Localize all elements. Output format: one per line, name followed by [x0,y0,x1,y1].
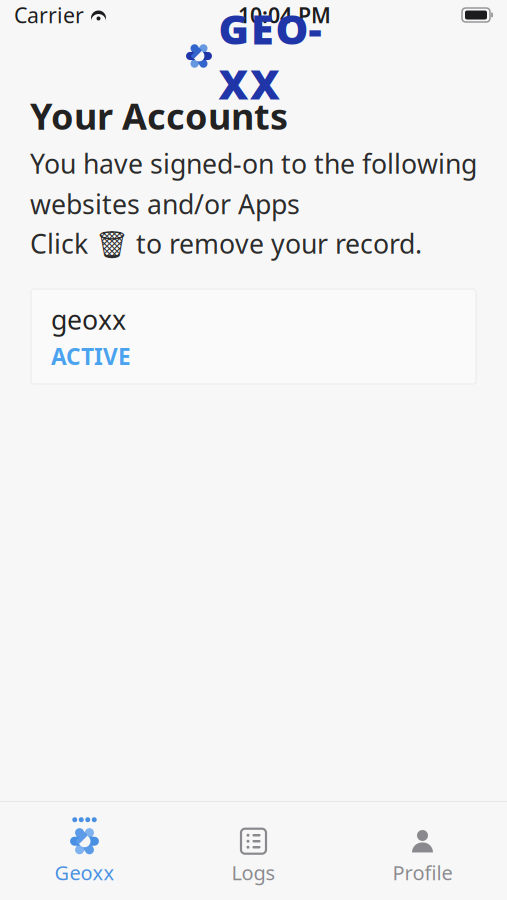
button[interactable]: Profile [338,802,507,900]
staticText: Click 🗑 to remove your record. [30,226,422,261]
staticText: Profile [392,859,452,886]
button[interactable]: geoxx [31,289,476,384]
staticText: ACTIVE [51,341,131,371]
staticText: You have signed-on to the following webs… [30,146,477,222]
staticText: geoxx [51,302,126,337]
staticText: Carrier [14,1,84,29]
staticText: Your Accounts [30,92,288,140]
button[interactable]: Logs [169,802,338,900]
staticText: Geoxx [54,859,114,886]
button[interactable]: Geoxx [0,802,169,900]
staticText: Logs [231,859,275,886]
staticText: GEOXX [218,1,321,111]
staticText: 10:04 PM [238,1,331,29]
